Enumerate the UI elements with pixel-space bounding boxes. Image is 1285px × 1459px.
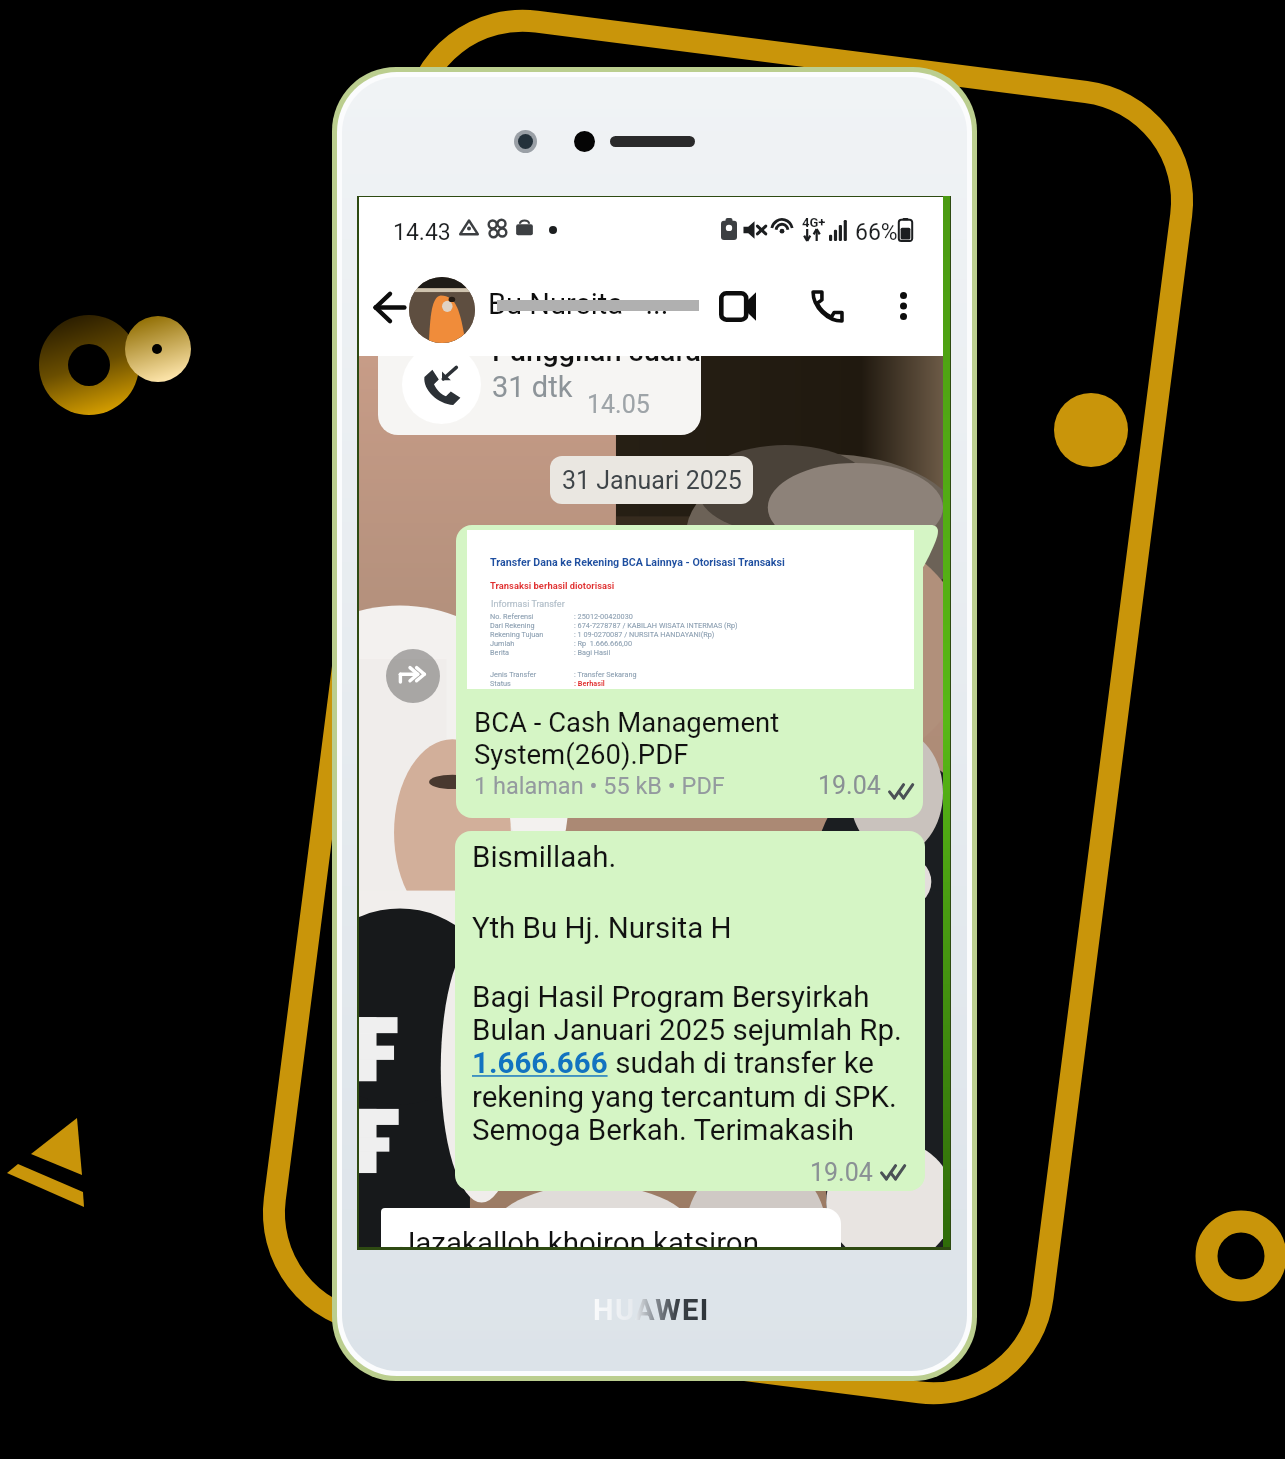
- staticText: sudah di transfer ke: [608, 1046, 874, 1081]
- staticText: 19.04: [810, 1158, 873, 1187]
- staticText: 31 Januari 2025: [562, 466, 742, 495]
- staticText: : Bagi Hasil: [574, 648, 611, 657]
- staticText: Bu Nursita - ...: [488, 287, 669, 321]
- button[interactable]: Transfer Dana ke Rekening BCA Lainnya - …: [456, 525, 923, 818]
- button[interactable]: Forward: [386, 649, 440, 703]
- staticText: Bagi Hasil Program Bersyirkah: [472, 980, 870, 1015]
- staticText: rekening yang tercantum di SPK.: [472, 1080, 897, 1115]
- staticText: Berita: [490, 648, 510, 657]
- button[interactable]: Bismillaah.: [455, 831, 925, 1191]
- button[interactable]: Panggilan suara: [378, 356, 701, 435]
- staticText: Jazakalloh khoiron katsiron: [399, 1226, 759, 1247]
- staticText: Bulan Januari 2025 sejumlah Rp.: [472, 1013, 902, 1048]
- button[interactable]: Call: [787, 271, 865, 341]
- button[interactable]: Profile photo: [409, 277, 475, 343]
- staticText: Status: [490, 679, 511, 688]
- staticText: Jumlah: [490, 639, 515, 648]
- staticText: : Rp 1.666.666,00: [574, 639, 632, 648]
- staticText: Semoga Berkah. Terimakasih: [472, 1113, 855, 1148]
- staticText: Rekening Tujuan: [490, 630, 544, 639]
- staticText: 1 halaman • 55 kB • PDF: [474, 772, 725, 800]
- staticText: Yth Bu Hj. Nursita H: [472, 911, 732, 946]
- staticText: Jenis Transfer: [490, 670, 537, 679]
- button[interactable]: 31 Januari 2025: [550, 456, 753, 504]
- staticText: : 25012-00420030: [574, 612, 633, 621]
- staticText: Informasi Transfer: [491, 599, 565, 610]
- button[interactable]: Video call: [699, 271, 777, 341]
- staticText: : 674-7278787 / KABILAH WISATA INTERMAS …: [574, 621, 738, 630]
- staticText: 66%: [855, 219, 898, 246]
- staticText: : Transfer Sekarang: [574, 670, 637, 679]
- staticText: : 1 09-0270087 / NURSITA HANDAYANI(Rp): [574, 630, 715, 639]
- staticText: 31 dtk: [492, 370, 573, 404]
- staticText: HUAWEI: [593, 1293, 710, 1327]
- staticText: BCA - Cash Management: [474, 706, 780, 738]
- staticText: 4G+: [802, 215, 826, 230]
- staticText: Transaksi berhasil diotorisasi: [490, 580, 615, 591]
- staticText: Panggilan suara: [492, 356, 701, 368]
- staticText: : Berhasil: [574, 679, 605, 688]
- button[interactable]: Jazakalloh khoiron katsiron: [381, 1208, 841, 1247]
- staticText: Bismillaah.: [472, 840, 617, 875]
- staticText: 1.666.666: [472, 1046, 608, 1081]
- staticText: 19.04: [818, 771, 881, 800]
- staticText: No. Referensi: [490, 612, 534, 621]
- staticText: Transfer Dana ke Rekening BCA Lainnya - …: [490, 556, 785, 569]
- staticText: 14.05: [587, 390, 650, 419]
- staticText: 14.43: [393, 219, 451, 246]
- staticText: Dari Rekening: [490, 621, 535, 630]
- button[interactable]: More options: [873, 271, 933, 341]
- staticText: System(260).PDF: [474, 738, 689, 770]
- button[interactable]: Back: [361, 278, 419, 336]
